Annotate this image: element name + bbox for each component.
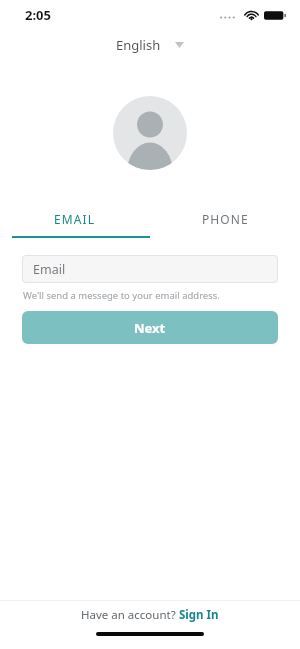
button[interactable]: English [106,30,194,60]
staticText: English [116,36,161,54]
staticText: We'll send a messege to your email addre… [23,289,220,302]
staticText: EMAIL [54,211,96,227]
staticText: Email [33,261,66,278]
button[interactable]: Profile photo [113,96,187,170]
button[interactable]: EMAIL [0,202,150,236]
staticText: 2:05 [25,6,51,24]
button[interactable]: Next [22,311,278,344]
staticText: Next [134,319,166,337]
button[interactable]: Have an account? [81,607,219,623]
staticText: Sign In [179,607,219,623]
button[interactable]: Email [22,255,278,283]
button[interactable]: PHONE [150,202,300,236]
staticText: PHONE [202,211,249,227]
staticText: Have an account? [81,607,179,623]
